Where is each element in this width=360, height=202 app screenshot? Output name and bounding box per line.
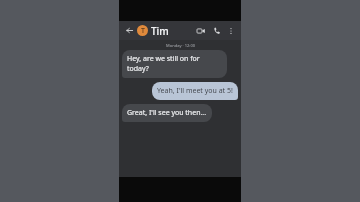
staticText: T (141, 26, 145, 36)
button[interactable]: Hey, are we still on for today? (122, 50, 227, 78)
button[interactable]: Video call (194, 24, 207, 37)
staticText: Hey, are we still on for today? (127, 54, 222, 74)
button[interactable]: Yeah, I'll meet you at 5! (152, 82, 238, 100)
staticText: Monday · 12:00 (166, 43, 195, 48)
staticText: Tim (151, 24, 169, 38)
button[interactable]: Back (123, 24, 136, 37)
staticText: Yeah, I'll meet you at 5! (157, 86, 233, 96)
button[interactable]: More options (225, 25, 237, 37)
staticText: Great, I'll see you then... (127, 108, 207, 118)
button[interactable]: Great, I'll see you then... (122, 104, 212, 122)
button[interactable]: Call (210, 24, 223, 37)
